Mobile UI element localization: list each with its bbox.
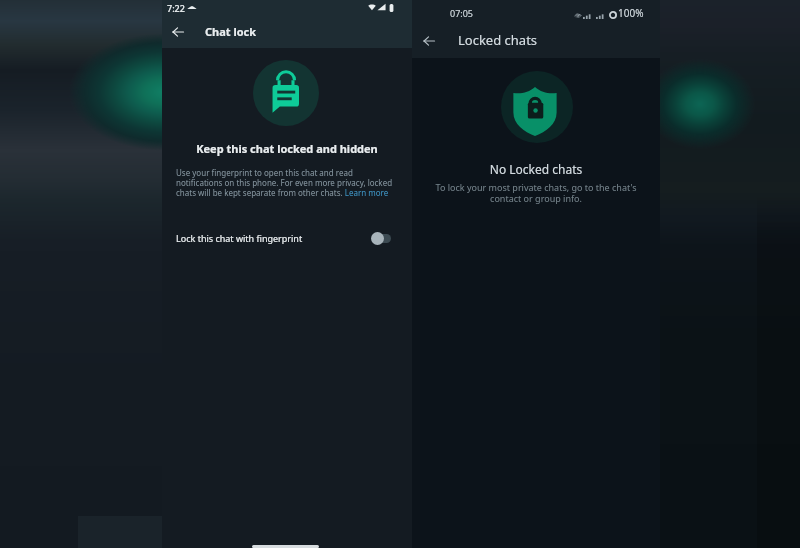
button[interactable]: Lock this chat with fingerprint: [162, 225, 412, 251]
staticText: Locked chats: [458, 31, 538, 49]
staticText: Lock this chat with fingerprint: [176, 232, 303, 244]
button[interactable]: Back: [415, 27, 442, 54]
staticText: To lock your most private chats, go to t…: [432, 181, 640, 205]
staticText: Use your fingerprint to open this chat a…: [176, 167, 395, 198]
staticText: 100%: [618, 6, 644, 20]
button[interactable]: Back: [164, 18, 191, 45]
staticText: No Locked chats: [412, 161, 660, 177]
staticText: Keep this chat locked and hidden: [162, 141, 412, 156]
staticText: 07:05: [450, 7, 474, 19]
staticText: 7:22: [167, 2, 185, 14]
staticText: Chat lock: [205, 24, 257, 39]
